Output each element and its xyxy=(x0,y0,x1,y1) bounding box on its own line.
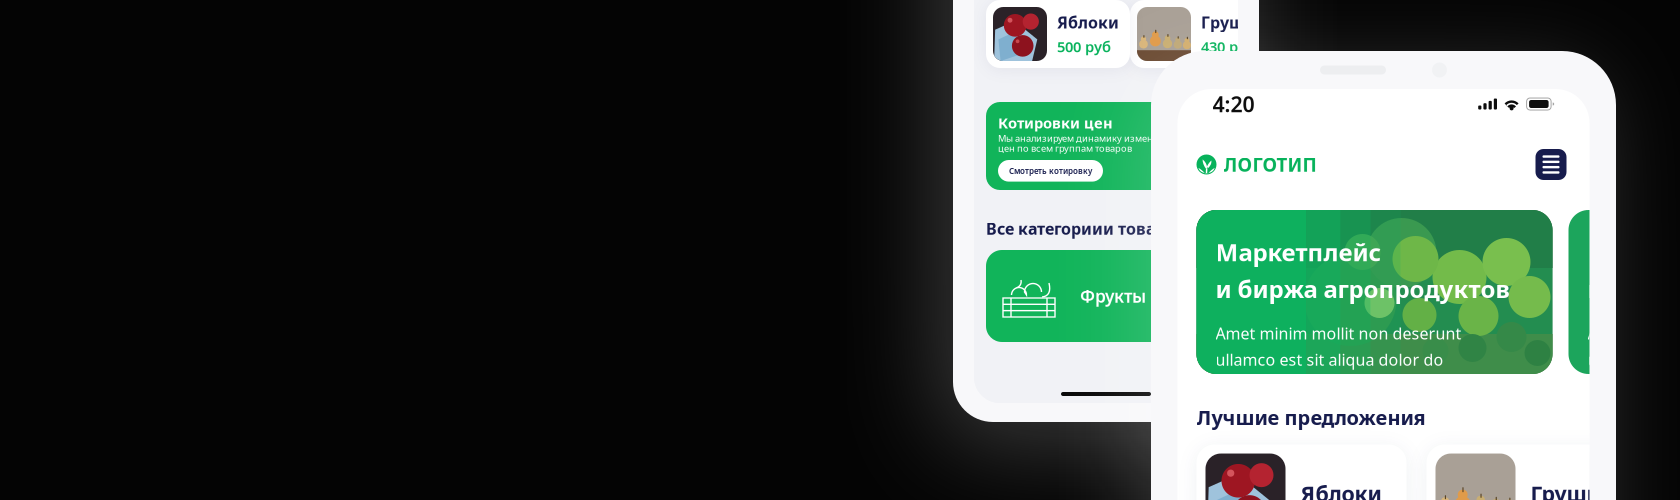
staticText: Груши xyxy=(1530,479,1600,500)
staticText: Все категориии товаров xyxy=(986,218,1186,239)
staticText: Смотреть котировку xyxy=(1009,165,1092,176)
button[interactable]: Котировки цен xyxy=(986,102,1244,190)
staticText: Маркетплейс xyxy=(1215,236,1381,268)
staticText: ullamco est sit aliqua xyxy=(1587,349,1680,370)
button[interactable]: Груши xyxy=(1426,445,1636,500)
button[interactable]: Смотреть котировку xyxy=(998,160,1103,182)
staticText: Яблоки xyxy=(1300,479,1381,500)
button[interactable]: Яблоки xyxy=(1196,445,1406,500)
staticText: ЛОГОТИП xyxy=(1223,152,1316,177)
button[interactable]: Яблоки xyxy=(986,0,1130,68)
staticText: Amet minim mollit non deserunt xyxy=(1215,323,1461,344)
button[interactable]: Маркетплейс xyxy=(1196,210,1552,374)
staticText: Фрукты xyxy=(1080,284,1146,307)
staticText: 430 руб xyxy=(1201,37,1255,56)
staticText: Биржа xyxy=(1587,236,1668,268)
button[interactable]: Биржа xyxy=(1568,210,1680,374)
staticText: и биржа агропродуктов xyxy=(1215,273,1509,305)
staticText: Amet minim mollit non xyxy=(1587,323,1680,344)
staticText: Мы анализируем динамику изменения xyxy=(998,132,1175,144)
button[interactable]: Фрукты xyxy=(986,250,1244,342)
staticText: Яблоки xyxy=(1057,12,1119,33)
staticText: 500 руб xyxy=(1057,37,1111,56)
staticText: Груши xyxy=(1201,12,1255,33)
button[interactable]: Menu xyxy=(1535,149,1566,180)
button[interactable]: ЛОГОТИП xyxy=(1196,152,1316,177)
staticText: ullamco est sit aliqua dolor do xyxy=(1215,349,1443,370)
staticText: 4:20 xyxy=(1212,90,1254,118)
staticText: поставщиков xyxy=(1587,273,1680,305)
staticText: цен по всем группам товаров xyxy=(998,142,1132,154)
button[interactable]: Груши xyxy=(1130,0,1274,68)
staticText: Котировки цен xyxy=(998,113,1113,132)
staticText: Лучшие предложения xyxy=(1196,404,1425,431)
